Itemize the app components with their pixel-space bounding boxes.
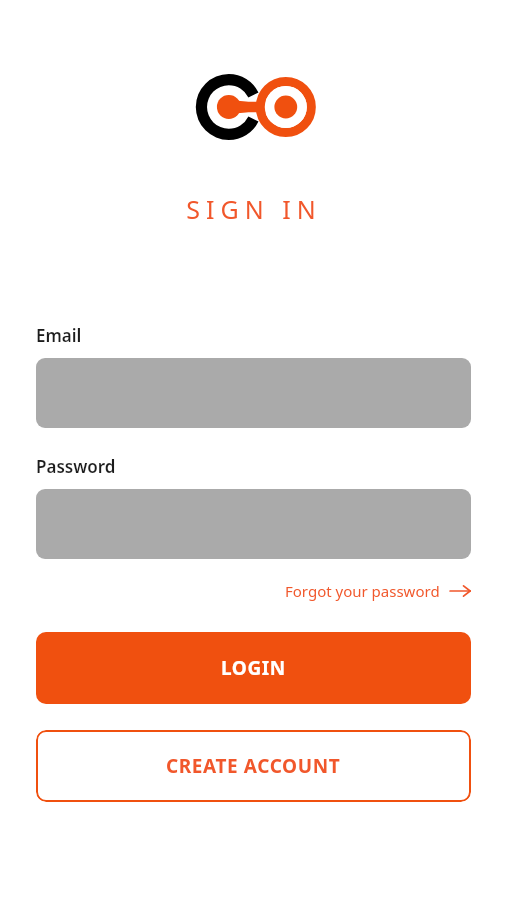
button[interactable]: Forgot your password xyxy=(285,577,471,605)
button[interactable] xyxy=(36,358,471,428)
staticText: SIGN IN xyxy=(186,192,322,226)
button[interactable]: CREATE ACCOUNT xyxy=(36,730,471,802)
staticText: CREATE ACCOUNT xyxy=(166,753,341,779)
button[interactable]: LOGIN xyxy=(36,632,471,704)
button[interactable] xyxy=(36,489,471,559)
staticText: LOGIN xyxy=(221,655,286,681)
staticText: Email xyxy=(36,324,82,347)
staticText: Password xyxy=(36,455,116,478)
other: CO logo xyxy=(194,74,314,140)
staticText: Forgot your password xyxy=(285,581,440,601)
